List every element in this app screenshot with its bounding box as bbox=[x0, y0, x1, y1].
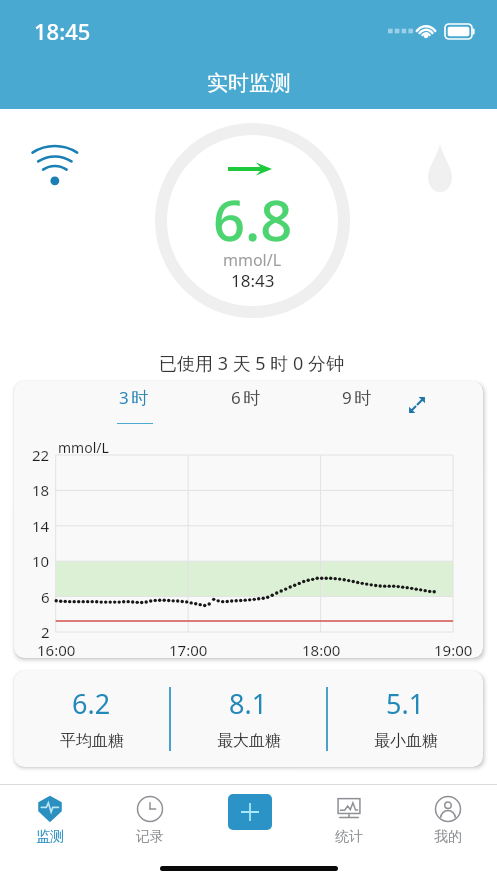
button[interactable]: 监测 bbox=[0, 785, 100, 856]
staticText: mmol/L bbox=[58, 438, 109, 457]
button[interactable]: Sensor signal bbox=[30, 140, 80, 188]
staticText: 6时 bbox=[231, 386, 263, 409]
staticText: 9时 bbox=[342, 386, 374, 409]
staticText: 5.1 bbox=[386, 685, 425, 722]
staticText: 2 bbox=[41, 622, 50, 642]
staticText: 6.2 bbox=[72, 685, 111, 722]
staticText: 记录 bbox=[136, 828, 164, 846]
staticText: 18 bbox=[32, 480, 50, 500]
staticText: 平均血糖 bbox=[60, 731, 124, 751]
staticText: 3时 bbox=[119, 386, 151, 409]
staticText: 6 bbox=[41, 587, 50, 607]
button[interactable]: Fullscreen bbox=[402, 390, 432, 420]
staticText: 最大血糖 bbox=[217, 731, 281, 751]
staticText: 监测 bbox=[36, 828, 64, 846]
button[interactable]: 3时 bbox=[95, 386, 175, 424]
staticText: 已使用 3 天 5 时 0 分钟 bbox=[159, 351, 344, 376]
staticText: 22 bbox=[32, 445, 50, 465]
button[interactable]: Add record bbox=[228, 794, 272, 830]
button[interactable]: 记录 bbox=[100, 785, 200, 856]
staticText: 8.1 bbox=[229, 685, 268, 722]
staticText: 我的 bbox=[434, 828, 462, 846]
staticText: 14 bbox=[32, 516, 50, 536]
staticText: 最小血糖 bbox=[374, 731, 438, 751]
button[interactable]: 5.1 bbox=[328, 671, 483, 767]
staticText: 10 bbox=[32, 551, 50, 571]
staticText: 6.8 bbox=[213, 181, 293, 257]
staticText: 18:00 bbox=[302, 640, 341, 658]
button[interactable]: 我的 bbox=[398, 785, 497, 856]
button[interactable]: 统计 bbox=[299, 785, 398, 856]
button[interactable]: 6时 bbox=[207, 386, 287, 424]
staticText: 实时监测 bbox=[207, 70, 291, 96]
staticText: 18:45 bbox=[34, 16, 91, 46]
button[interactable]: Calibrate bbox=[428, 144, 452, 192]
staticText: 统计 bbox=[335, 828, 363, 846]
button[interactable]: 8.1 bbox=[171, 671, 326, 767]
staticText: 19:00 bbox=[434, 640, 473, 658]
button[interactable]: 6.2 bbox=[14, 671, 169, 767]
staticText: mmol/L bbox=[223, 249, 282, 271]
staticText: 17:00 bbox=[169, 640, 208, 658]
button[interactable]: 9时 bbox=[318, 386, 398, 424]
staticText: 18:43 bbox=[231, 269, 275, 292]
staticText: 16:00 bbox=[37, 640, 76, 658]
